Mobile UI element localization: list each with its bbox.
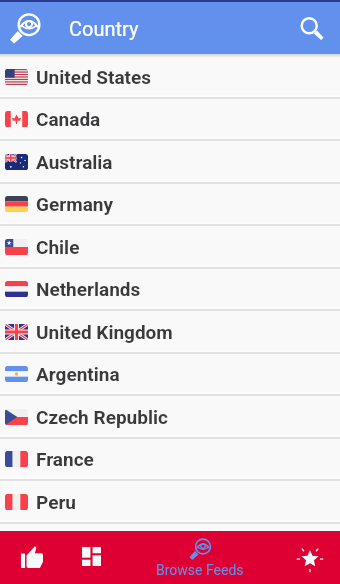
button[interactable]: France <box>0 438 340 480</box>
button[interactable]: Browse Feeds <box>140 531 260 584</box>
button[interactable]: Search <box>290 7 332 49</box>
button[interactable]: Australia <box>0 140 340 183</box>
button[interactable]: United States <box>0 55 340 98</box>
button[interactable]: Highlights <box>282 531 338 584</box>
button[interactable]: App logo <box>0 2 50 54</box>
button[interactable]: Like <box>4 531 60 584</box>
staticText: Czech Republic <box>36 406 168 428</box>
staticText: Netherlands <box>36 278 141 300</box>
staticText: Peru <box>36 491 76 513</box>
staticText: Country <box>69 17 139 40</box>
staticText: Chile <box>36 236 80 258</box>
button[interactable]: Chile <box>0 225 340 268</box>
staticText: Argentina <box>36 363 120 385</box>
button[interactable]: Peru <box>0 480 340 523</box>
button[interactable]: Canada <box>0 98 340 140</box>
button[interactable]: Dashboard <box>63 531 119 584</box>
button[interactable]: United Kingdom <box>0 310 340 353</box>
staticText: United States <box>36 66 152 88</box>
staticText: France <box>36 448 94 470</box>
button[interactable]: Netherlands <box>0 268 340 310</box>
button[interactable]: Germany <box>0 183 340 225</box>
staticText: Germany <box>36 193 114 215</box>
staticText: Canada <box>36 108 101 130</box>
button[interactable]: Czech Republic <box>0 395 340 438</box>
staticText: United Kingdom <box>36 321 173 343</box>
staticText: Australia <box>36 151 113 173</box>
button[interactable]: Argentina <box>0 353 340 395</box>
staticText: Browse Feeds <box>156 562 244 578</box>
